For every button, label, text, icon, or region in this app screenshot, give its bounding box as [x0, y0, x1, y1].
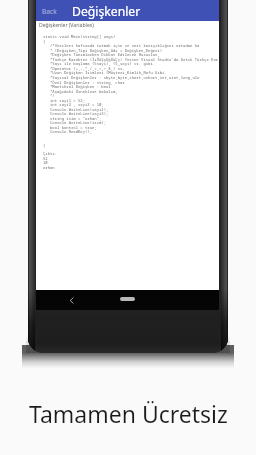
button[interactable]: Back [38, 5, 61, 18]
button[interactable]: Home [120, 297, 135, 301]
staticText: bool kontrol = true; [43, 125, 97, 130]
staticText: Console.ReadKey(); [43, 129, 93, 134]
staticText: Console.WriteLine(isim); [43, 120, 107, 125]
staticText: */ [43, 93, 55, 98]
staticText: Değişkenler (Variables) [39, 22, 94, 29]
staticText: 10 [43, 160, 48, 165]
staticText: } [43, 143, 46, 148]
staticText: int sayi1 = 52; [43, 98, 86, 103]
staticText: orhan [43, 165, 55, 170]
staticText: { [43, 39, 46, 44]
staticText: *Aşağıdaki Örneklere bakalım, [43, 89, 118, 94]
staticText: 52 [43, 156, 48, 161]
staticText: string isim = "orhan"; [43, 116, 102, 121]
staticText: *Sayı ile başlama (5sayi), (5_sayi) vs. … [43, 61, 156, 66]
staticText: Console.WriteLine(sayi3); [43, 111, 109, 116]
staticText: /*Verileri hafızada tutmak için ve veri … [43, 43, 200, 48]
button[interactable]: Back [66, 295, 77, 306]
staticText: *Değişken Tanımlarken Dikkat Edilecek Hu… [43, 52, 160, 57]
staticText: *Türkçe Karakter (İıÖöŞşĞğÜüÇç) Yerine V… [43, 57, 219, 62]
staticText: * (Değişken_Tipi Değişken_Adı = Değişken… [43, 48, 163, 53]
staticText: int sayi2 , sayi3 = 10; [43, 102, 104, 107]
staticText: Console.WriteLine(sayi1); [43, 107, 109, 112]
staticText: Tamamen Ücretsiz [29, 398, 228, 429]
staticText: static void Main(string[] args) [43, 34, 116, 39]
staticText: *Uzun Değişken İsimleri (Müşteri_Kimlik_… [43, 70, 167, 75]
staticText: Değişkenler [72, 3, 141, 20]
staticText: *Mantıksal Değişken : bool [43, 84, 111, 89]
staticText: *Sayısal Değişkenler : sbyte,byte,short,… [43, 75, 200, 80]
staticText: *Özel Değişkenler : string, char [43, 80, 125, 85]
staticText: Çıktı: [43, 151, 58, 156]
staticText: *Operator (+,-,*,/,=,<,>,%,) vs. [43, 66, 125, 71]
staticText: Back [42, 7, 57, 16]
